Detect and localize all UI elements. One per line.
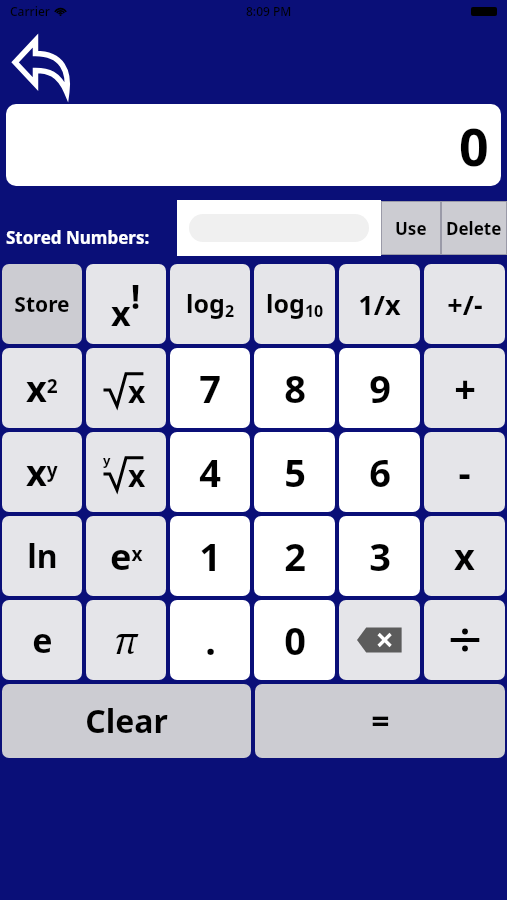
button[interactable]: e to the power x [86, 516, 166, 596]
button[interactable]: Store [2, 264, 82, 344]
staticText: 4 [199, 446, 221, 498]
button[interactable]: e [2, 600, 82, 680]
staticText: + [454, 362, 476, 414]
button[interactable]: x to the power y [2, 432, 82, 512]
button[interactable]: Backspace [339, 600, 420, 680]
staticText: 1 [199, 530, 221, 582]
staticText: 0 [459, 110, 489, 181]
button[interactable]: Back [6, 26, 84, 104]
staticText: xy [26, 448, 58, 497]
button[interactable]: + [424, 348, 505, 428]
staticText: 8:09 PM [246, 3, 292, 19]
staticText: Use [395, 217, 427, 240]
button[interactable]: 1/x [339, 264, 420, 344]
button[interactable]: 7 [170, 348, 250, 428]
staticText: Carrier [10, 3, 50, 19]
button[interactable]: . [170, 600, 250, 680]
button[interactable]: 2 [254, 516, 335, 596]
staticText: Stored Numbers: [6, 226, 150, 249]
button[interactable]: x squared [2, 348, 82, 428]
staticText: 5 [284, 446, 306, 498]
staticText: log10 [266, 286, 324, 322]
staticText: 3 [369, 530, 391, 582]
button[interactable]: 6 [339, 432, 420, 512]
staticText: ex [110, 532, 143, 581]
button[interactable]: log base 2 [170, 264, 250, 344]
button[interactable]: log base 10 [254, 264, 335, 344]
button[interactable]: y-th root of x [86, 432, 166, 512]
staticText: x! [111, 273, 141, 336]
button[interactable]: Clear [2, 684, 251, 758]
staticText: 9 [369, 362, 391, 414]
staticText: 6 [369, 446, 391, 498]
button[interactable]: 1 [170, 516, 250, 596]
staticText: . [205, 614, 216, 666]
button[interactable]: - [424, 432, 505, 512]
staticText: Store [14, 290, 70, 319]
staticText: 7 [199, 362, 221, 414]
staticText: +/- [447, 286, 483, 323]
button[interactable]: +/- [424, 264, 505, 344]
staticText: Delete [446, 217, 502, 240]
button[interactable]: 0 [254, 600, 335, 680]
button[interactable]: 8 [254, 348, 335, 428]
staticText: x2 [26, 364, 58, 413]
staticText: π [114, 616, 138, 665]
staticText: log2 [186, 286, 235, 322]
staticText: x [128, 455, 146, 496]
button[interactable]: square root of x [86, 348, 166, 428]
staticText: ln [27, 534, 58, 578]
button[interactable]: Use [381, 201, 441, 255]
staticText: y [103, 451, 111, 469]
button[interactable]: Stored numbers picker [177, 200, 381, 256]
button[interactable]: 5 [254, 432, 335, 512]
staticText: Clear [85, 699, 168, 743]
staticText: 1/x [358, 286, 401, 323]
staticText: = [371, 699, 390, 743]
staticText: 8 [284, 362, 306, 414]
staticText: 0 [284, 614, 306, 666]
button[interactable]: x [424, 516, 505, 596]
button[interactable]: Display [6, 104, 501, 186]
button[interactable]: 4 [170, 432, 250, 512]
button[interactable]: 3 [339, 516, 420, 596]
staticText: x [454, 532, 475, 581]
button[interactable]: Divide [424, 600, 505, 680]
button[interactable]: = [255, 684, 505, 758]
staticText: x [128, 371, 146, 412]
button[interactable]: ln [2, 516, 82, 596]
staticText: e [32, 617, 53, 663]
staticText: - [458, 446, 471, 498]
button[interactable]: 9 [339, 348, 420, 428]
staticText: 2 [284, 530, 306, 582]
button[interactable]: pi [86, 600, 166, 680]
button[interactable]: x factorial [86, 264, 166, 344]
button[interactable]: Delete [441, 201, 507, 255]
